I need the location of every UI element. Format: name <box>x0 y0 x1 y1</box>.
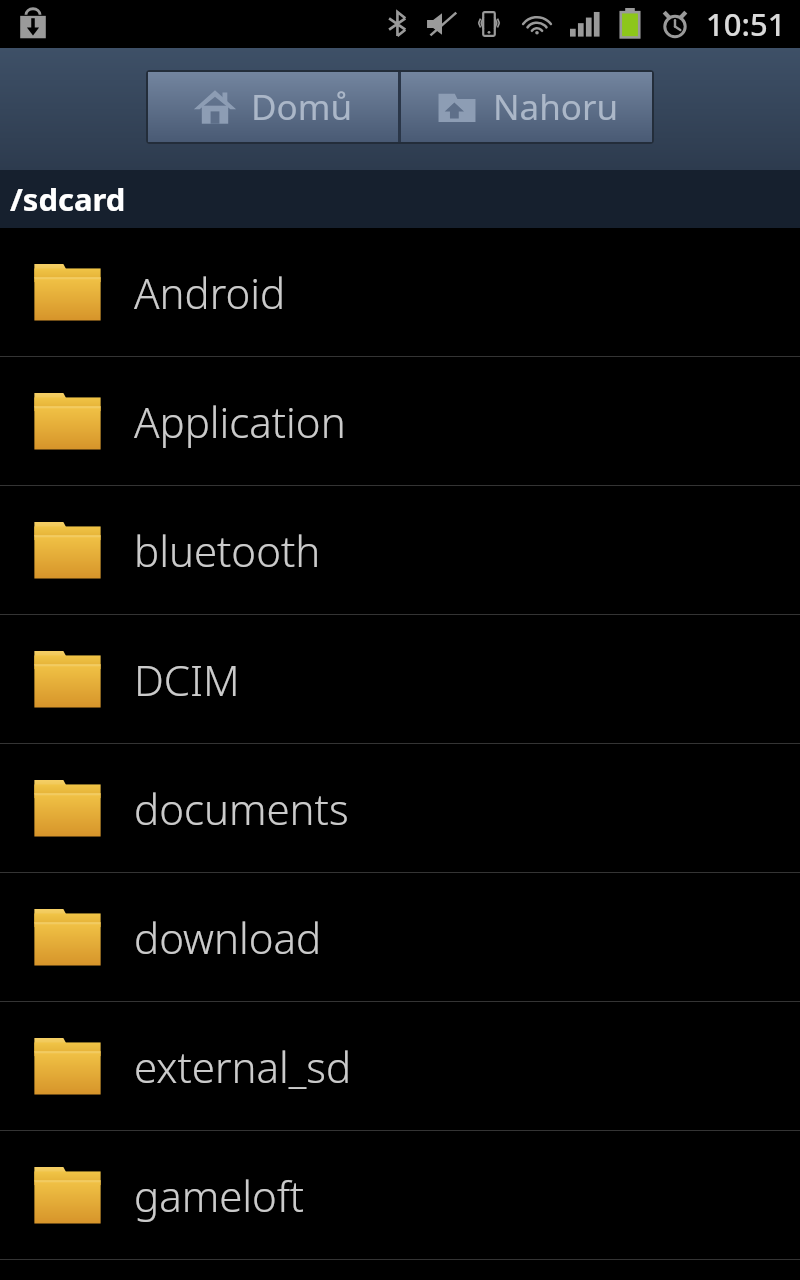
button[interactable]: Application <box>0 357 800 485</box>
staticText: Nahoru <box>493 83 619 131</box>
staticText: 10:51 <box>706 3 786 45</box>
button[interactable]: DCIM <box>0 615 800 743</box>
staticText: documents <box>134 780 349 837</box>
staticText: bluetooth <box>134 522 321 579</box>
staticText: DCIM <box>134 651 240 708</box>
button[interactable]: documents <box>0 744 800 872</box>
button[interactable]: download <box>0 873 800 1001</box>
button[interactable]: gameloft <box>0 1131 800 1259</box>
button[interactable]: Android <box>0 228 800 356</box>
other: Download <box>17 7 49 41</box>
staticText: gameloft <box>134 1167 305 1224</box>
staticText: download <box>134 909 322 966</box>
staticText: /sdcard <box>10 178 126 220</box>
staticText: Android <box>134 264 286 321</box>
staticText: Domů <box>251 83 353 131</box>
button[interactable]: external_sd <box>0 1002 800 1130</box>
button[interactable]: bluetooth <box>0 486 800 614</box>
staticText: Application <box>134 393 346 450</box>
staticText: external_sd <box>134 1038 352 1095</box>
button[interactable]: Domů <box>148 72 398 142</box>
button[interactable]: Nahoru <box>401 72 652 142</box>
